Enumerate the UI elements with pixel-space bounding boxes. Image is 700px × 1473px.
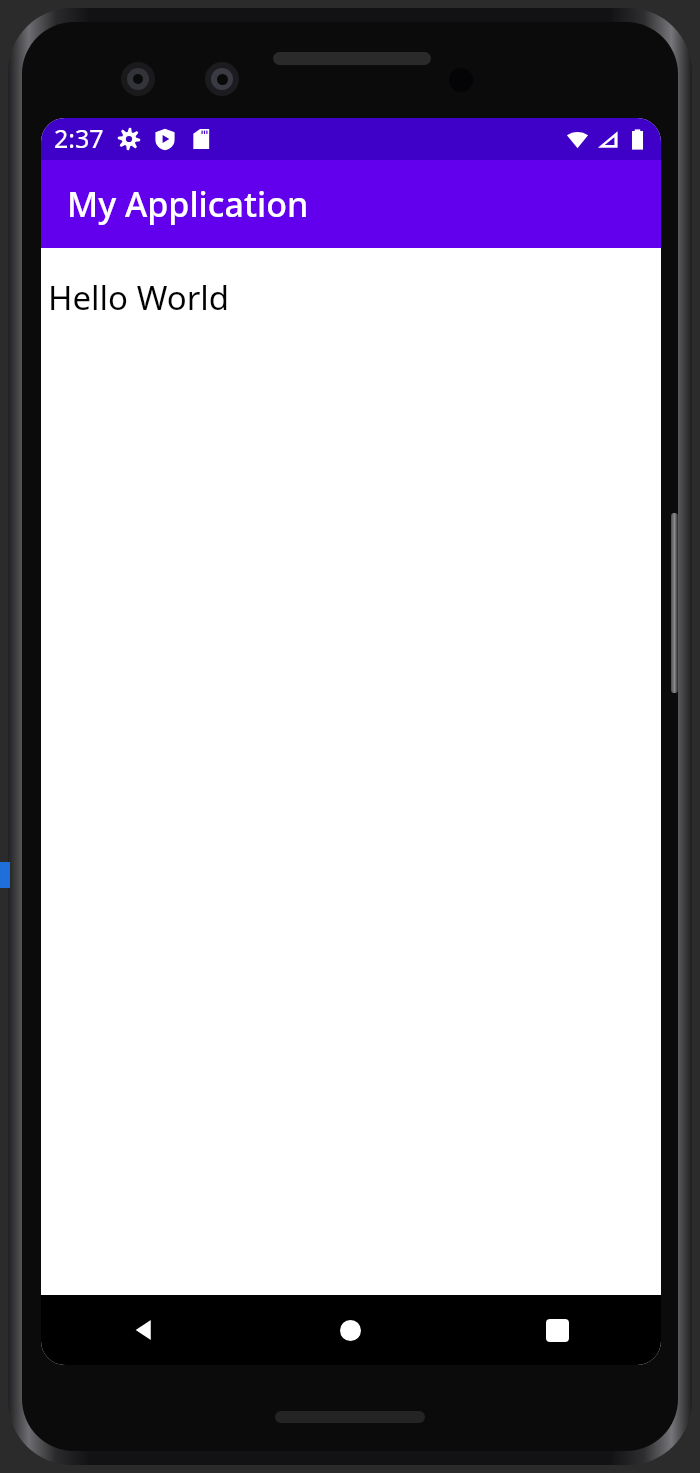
button[interactable]: Back <box>41 1295 247 1365</box>
staticText: My Application <box>67 181 309 227</box>
button[interactable]: Recent apps <box>454 1295 661 1365</box>
button[interactable]: Home <box>247 1295 454 1365</box>
staticText: Hello World <box>48 275 230 320</box>
staticText: 2:37 <box>54 121 104 155</box>
